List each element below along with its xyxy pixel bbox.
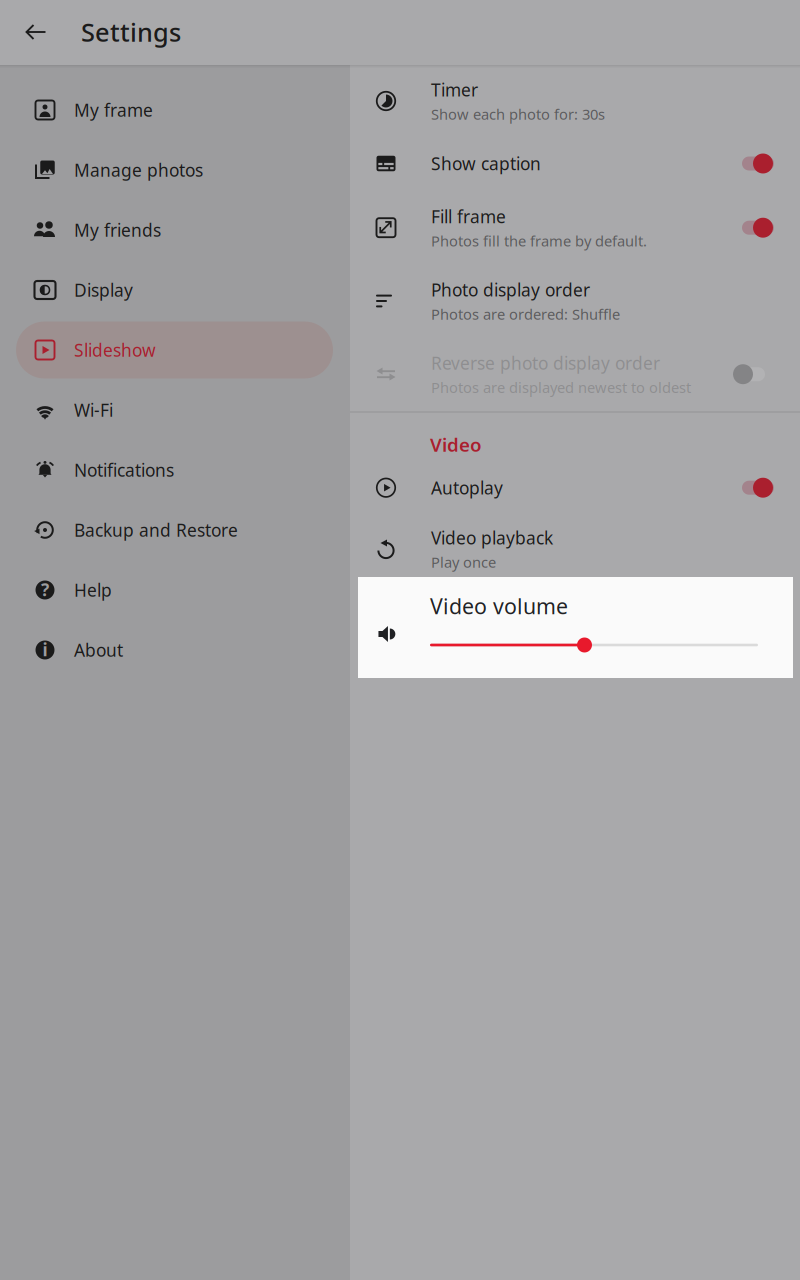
staticText: Photos are displayed newest to oldest xyxy=(431,377,691,397)
button[interactable]: Autoplay xyxy=(350,456,800,520)
staticText: Video playback xyxy=(431,526,553,549)
button[interactable]: Photo display order xyxy=(350,269,800,333)
staticText: Play once xyxy=(431,552,496,572)
button[interactable]: Manage photos xyxy=(0,140,350,200)
button[interactable]: Backup and Restore xyxy=(0,500,350,560)
staticText: Timer xyxy=(431,78,478,101)
button[interactable]: My friends xyxy=(0,200,350,260)
button[interactable]: My frame xyxy=(0,80,350,140)
button[interactable]: i xyxy=(0,620,350,680)
staticText: Show each photo for: 30s xyxy=(431,104,605,124)
staticText: Display xyxy=(74,278,133,301)
staticText: Photos are ordered: Shuffle xyxy=(431,304,620,324)
staticText: About xyxy=(74,638,123,661)
button[interactable]: Reverse photo display order xyxy=(350,342,800,406)
staticText: Video xyxy=(430,432,482,457)
staticText: i xyxy=(42,638,47,661)
button[interactable]: Slideshow xyxy=(0,320,350,380)
staticText: Wi-Fi xyxy=(74,398,113,421)
button[interactable]: Back xyxy=(0,0,48,48)
staticText: My friends xyxy=(74,218,161,241)
staticText: ? xyxy=(41,578,49,601)
staticText: Video volume xyxy=(430,592,568,620)
staticText: Fill frame xyxy=(431,205,506,228)
staticText: Reverse photo display order xyxy=(431,351,660,374)
staticText: My frame xyxy=(74,98,153,121)
staticText: Backup and Restore xyxy=(74,518,238,541)
staticText: Photo display order xyxy=(431,278,590,301)
staticText: Slideshow xyxy=(74,338,156,361)
button[interactable]: Display xyxy=(0,260,350,320)
staticText: Settings xyxy=(81,15,181,49)
button[interactable]: Fill frame xyxy=(350,196,800,260)
staticText: Autoplay xyxy=(431,476,503,499)
button[interactable]: Show caption xyxy=(350,131,800,195)
button[interactable]: ? xyxy=(0,560,350,620)
button[interactable]: Timer xyxy=(350,69,800,133)
button[interactable]: Notifications xyxy=(0,440,350,500)
staticText: Notifications xyxy=(74,458,174,481)
staticText: Photos fill the frame by default. xyxy=(431,231,647,250)
staticText: Show caption xyxy=(431,152,541,175)
button[interactable]: Video playback xyxy=(350,517,800,581)
button[interactable]: Video volume xyxy=(358,577,793,678)
button[interactable]: Wi-Fi xyxy=(0,380,350,440)
staticText: Help xyxy=(74,578,112,601)
staticText: Manage photos xyxy=(74,158,203,181)
